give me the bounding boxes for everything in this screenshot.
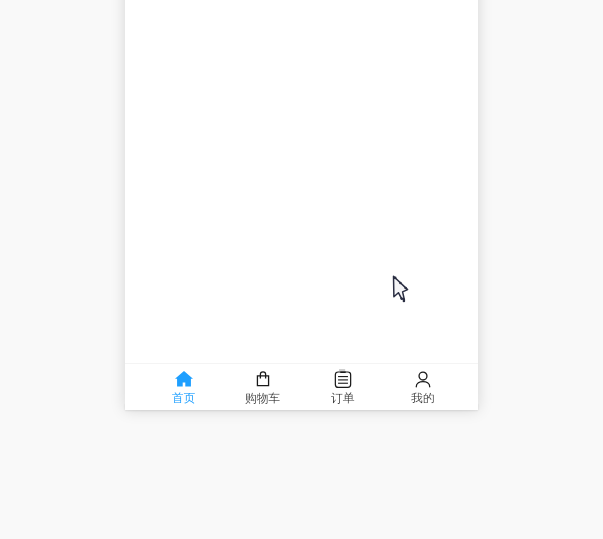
button[interactable]: Shopping cart — [223, 364, 303, 406]
staticText: 首页 — [172, 391, 196, 406]
button[interactable]: Orders — [303, 364, 383, 406]
staticText: 购物车 — [245, 391, 281, 406]
staticText: 订单 — [331, 391, 355, 406]
staticText: 我的 — [411, 391, 435, 406]
button[interactable]: Profile — [383, 364, 463, 406]
other: Pointer — [392, 274, 410, 304]
button[interactable]: Home — [144, 364, 223, 406]
